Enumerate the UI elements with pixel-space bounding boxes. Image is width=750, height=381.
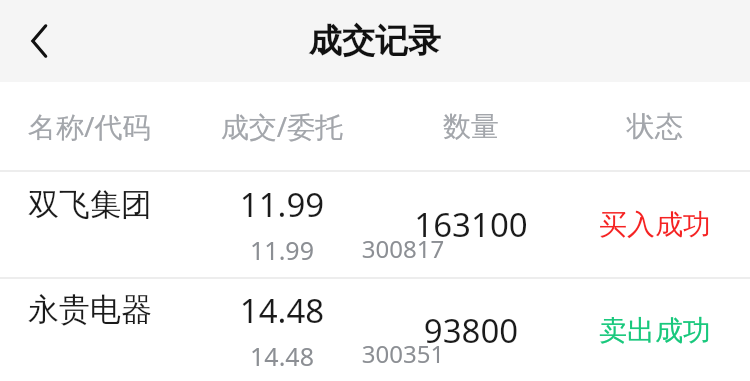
staticText: 11.99 [192, 182, 372, 227]
staticText: 数量 [381, 109, 561, 144]
staticText: 163100 [381, 202, 561, 247]
staticText: 14.48 [192, 339, 372, 373]
staticText: 300817 [28, 232, 750, 265]
staticText: 状态 [565, 109, 745, 144]
staticText: 名称/代码 [28, 107, 151, 145]
staticText: 300351 [28, 337, 750, 370]
staticText: 成交/委托 [192, 107, 372, 145]
staticText: 14.48 [192, 288, 372, 333]
button[interactable]: 双飞集团 [0, 172, 750, 277]
staticText: 93800 [381, 308, 561, 353]
button[interactable]: Back [12, 14, 66, 68]
staticText: 永贵电器 [28, 290, 152, 329]
staticText: 卖出成功 [565, 313, 745, 348]
button[interactable]: 永贵电器 [0, 279, 750, 381]
staticText: 成交记录 [309, 20, 441, 62]
staticText: 买入成功 [565, 207, 745, 242]
staticText: 11.99 [192, 233, 372, 267]
staticText: 双飞集团 [28, 185, 152, 224]
